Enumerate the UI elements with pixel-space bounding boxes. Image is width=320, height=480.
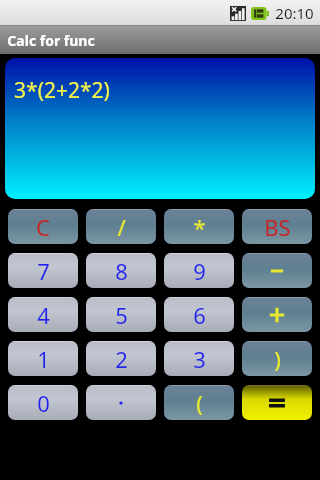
button[interactable]: 5	[86, 297, 156, 332]
button[interactable]: 9	[164, 253, 234, 288]
button[interactable]: 7	[8, 253, 78, 288]
staticText: (	[196, 388, 203, 418]
staticText: C	[36, 212, 50, 242]
staticText: 0	[37, 388, 50, 418]
staticText: 7	[37, 256, 50, 286]
button[interactable]: 3*(2+2*2)	[5, 58, 315, 199]
button[interactable]: Multiply	[164, 209, 234, 244]
staticText: 3	[193, 344, 206, 374]
button[interactable]: Clear	[8, 209, 78, 244]
staticText: 4	[37, 300, 50, 330]
staticText: Calc for func	[7, 31, 95, 50]
staticText: BS	[264, 212, 291, 242]
button[interactable]: Plus	[242, 297, 312, 332]
button[interactable]: 6	[164, 297, 234, 332]
staticText: 2	[115, 344, 128, 374]
button[interactable]: Open parenthesis	[164, 385, 234, 420]
button[interactable]: 8	[86, 253, 156, 288]
button[interactable]: Backspace	[242, 209, 312, 244]
staticText: 5	[115, 300, 128, 330]
button[interactable]: 2	[86, 341, 156, 376]
button[interactable]: Decimal point	[86, 385, 156, 420]
button[interactable]: Divide	[86, 209, 156, 244]
staticText: 20:10	[275, 3, 314, 23]
button[interactable]: 1	[8, 341, 78, 376]
button[interactable]: 0	[8, 385, 78, 420]
staticText: )	[274, 344, 281, 374]
staticText: 8	[115, 256, 128, 286]
staticText: *	[193, 212, 206, 242]
button[interactable]: 4	[8, 297, 78, 332]
staticText: 3*(2+2*2)	[14, 76, 110, 105]
button[interactable]: Close parenthesis	[242, 341, 312, 376]
staticText: 6	[193, 300, 206, 330]
button[interactable]: Minus	[242, 253, 312, 288]
button[interactable]: 3	[164, 341, 234, 376]
button[interactable]: Equals	[242, 385, 312, 420]
staticText: 1	[37, 344, 50, 374]
staticText: /	[117, 212, 126, 242]
staticText: 9	[193, 256, 206, 286]
